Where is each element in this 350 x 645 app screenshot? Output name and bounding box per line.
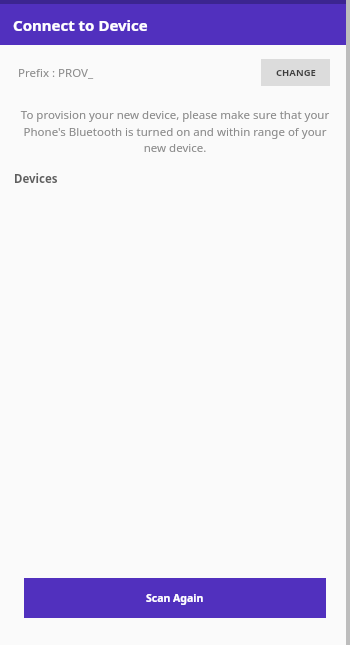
staticText: CHANGE (276, 66, 316, 79)
button[interactable]: Scan Again (24, 578, 326, 618)
staticText: Scan Again (146, 591, 204, 605)
staticText: Devices (14, 171, 58, 187)
button[interactable]: CHANGE (261, 59, 330, 86)
staticText: Connect to Device (13, 15, 148, 35)
staticText: Prefix : PROV_ (18, 65, 94, 81)
staticText: To provision your new device, please mak… (16, 107, 334, 155)
